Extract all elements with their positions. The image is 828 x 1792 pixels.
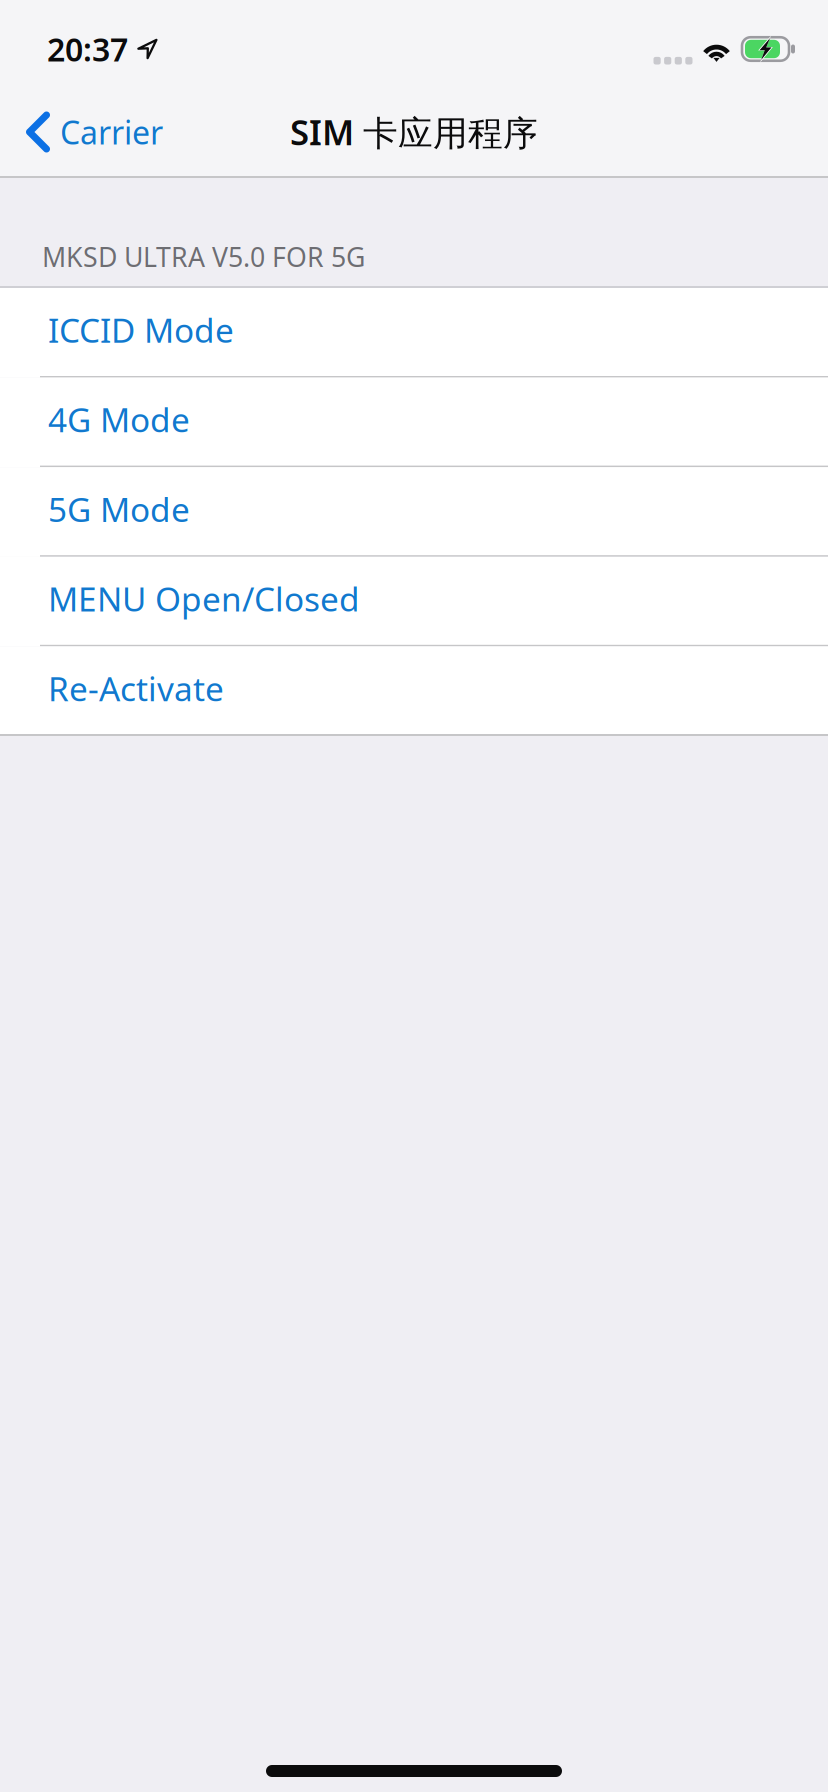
staticText: Carrier: [60, 111, 163, 153]
button[interactable]: MENU Open/Closed: [0, 557, 828, 646]
button[interactable]: 4G Mode: [0, 378, 828, 467]
button[interactable]: 5G Mode: [0, 467, 828, 557]
staticText: 4G Mode: [48, 397, 190, 442]
button[interactable]: Re-Activate: [0, 646, 828, 736]
staticText: MKSD ULTRA V5.0 FOR 5G: [42, 239, 365, 274]
staticText: Re-Activate: [48, 666, 224, 710]
staticText: 5G Mode: [48, 487, 190, 531]
button[interactable]: Carrier: [0, 88, 179, 176]
staticText: 20:37: [47, 28, 128, 70]
button[interactable]: ICCID Mode: [0, 288, 828, 378]
staticText: ICCID Mode: [48, 308, 234, 352]
staticText: SIM 卡应用程序: [290, 109, 538, 155]
staticText: MENU Open/Closed: [48, 576, 360, 621]
